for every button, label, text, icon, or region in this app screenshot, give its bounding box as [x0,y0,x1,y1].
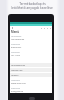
button[interactable]: Action 1 [40,27,42,29]
button[interactable]: Action 3 [46,27,48,29]
staticText: www.minta.hu [11,82,26,85]
button[interactable]: Action 2 [43,27,45,29]
staticText: Élelmiszer [11,46,22,49]
staticText: Mintatermék [11,38,25,41]
button[interactable]: Kapcsolat [10,87,52,93]
staticText: Letöltés [11,74,19,77]
staticText: Termékadatlap és [19,2,46,6]
button[interactable]: Letöltés [10,73,52,77]
staticText: Cikkszám [11,51,20,54]
button[interactable]: Terméknév [10,35,52,41]
button[interactable]: Action 4 [49,27,51,29]
staticText: Menü [11,30,19,34]
staticText: HU-1002 [11,54,20,57]
button[interactable]: Műszaki rajz [10,68,52,72]
staticText: info@minta [11,90,23,93]
button[interactable]: Termékadatlap [10,63,52,67]
staticText: Weboldal [11,79,20,82]
staticText: letölthető anyagok kezelése [11,6,53,10]
button[interactable]: Kategória [10,43,52,49]
staticText: Műszaki rajz [11,69,23,72]
button[interactable]: Weboldal [10,79,52,85]
staticText: Kapcsolat [11,87,21,90]
button[interactable]: Navigate up [11,27,13,29]
staticText: Termékadatlap [11,64,26,67]
button[interactable]: Cikkszám [10,51,52,57]
staticText: Kategória [11,43,21,46]
staticText: Terméknév [11,35,22,38]
